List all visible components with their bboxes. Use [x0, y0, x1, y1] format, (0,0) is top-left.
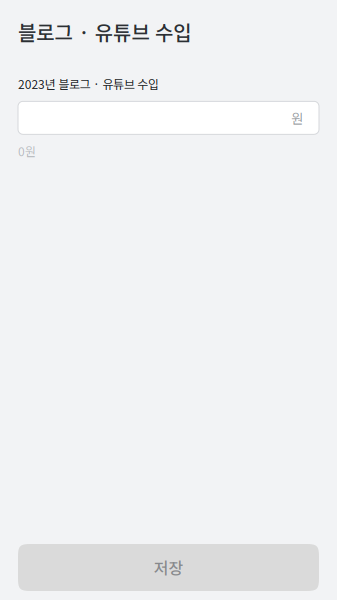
staticText: 원	[291, 108, 303, 127]
staticText: 저장	[153, 556, 183, 579]
staticText: 2023년 블로그 · 유튜브 수입	[18, 75, 159, 92]
button[interactable]: 저장	[18, 544, 319, 591]
staticText: 블로그 · 유튜브 수입	[18, 17, 191, 46]
staticText: 0원	[18, 142, 36, 160]
